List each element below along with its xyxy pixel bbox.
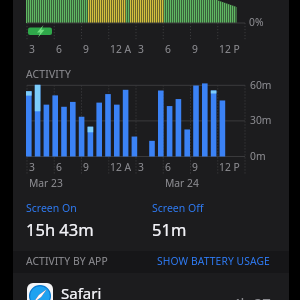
staticText: 6 — [165, 42, 171, 56]
staticText: 6 — [56, 160, 62, 174]
staticText: 9 — [192, 42, 198, 56]
staticText: 3 — [138, 160, 144, 174]
staticText: 6 — [165, 160, 171, 174]
button[interactable]: SHOW BATTERY USAGE — [157, 254, 270, 268]
staticText: Safari — [61, 283, 102, 300]
staticText: Mar 24 — [165, 176, 199, 190]
staticText: SHOW BATTERY USAGE — [157, 254, 270, 268]
button[interactable]: Safari — [13, 273, 289, 300]
staticText: 12 A — [110, 160, 132, 174]
staticText: ACTIVITY — [26, 67, 71, 81]
button[interactable]: Screen On — [26, 201, 94, 240]
staticText: 6 — [56, 42, 62, 56]
staticText: 9 — [83, 160, 89, 174]
staticText: 3 — [138, 42, 144, 56]
staticText: 15h 43m — [26, 218, 94, 240]
button[interactable]: Screen Off — [152, 201, 204, 240]
staticText: 9 — [192, 160, 198, 174]
staticText: 0% — [249, 15, 264, 29]
staticText: 12 P — [219, 42, 240, 56]
staticText: 51m — [152, 218, 187, 240]
staticText: 4h 27m — [232, 293, 285, 300]
staticText: 12 P — [219, 160, 240, 174]
staticText: 3 — [29, 42, 35, 56]
staticText: 3 — [29, 160, 35, 174]
staticText: 12 A — [110, 42, 132, 56]
staticText: ACTIVITY BY APP — [26, 254, 108, 268]
staticText: Screen Off — [152, 201, 204, 215]
staticText: 9 — [83, 42, 89, 56]
staticText: Screen On — [26, 201, 77, 215]
staticText: Mar 23 — [29, 176, 63, 190]
staticText: 0m — [250, 149, 266, 163]
staticText: 30m — [250, 113, 272, 127]
staticText: 60m — [250, 78, 272, 92]
